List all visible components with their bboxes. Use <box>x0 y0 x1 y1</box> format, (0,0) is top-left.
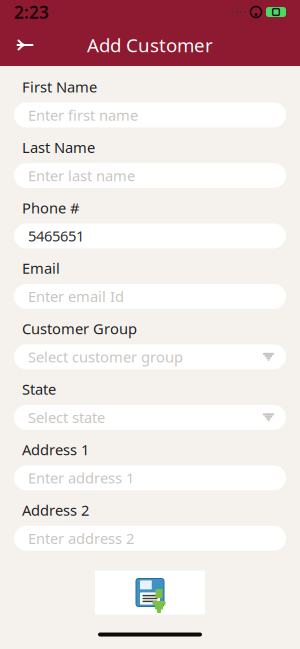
staticText: Enter address 2 <box>28 529 134 548</box>
staticText: State <box>22 379 56 399</box>
staticText: Address 2 <box>22 500 89 520</box>
button[interactable]: 5465651 <box>14 223 286 248</box>
staticText: Address 1 <box>22 440 89 459</box>
staticText: Select customer group <box>28 347 183 367</box>
button[interactable]: Back <box>6 28 44 62</box>
staticText: Email <box>22 258 60 278</box>
button[interactable]: Enter first name <box>14 102 286 127</box>
staticText: Select state <box>28 408 105 427</box>
staticText: Enter last name <box>28 166 135 185</box>
button[interactable]: Enter address 1 <box>14 465 286 490</box>
staticText: 5465651 <box>28 226 84 246</box>
staticText: Enter address 1 <box>28 468 134 488</box>
button[interactable]: Save <box>95 570 205 614</box>
button[interactable]: Enter email Id <box>14 284 286 309</box>
button[interactable]: Enter address 2 <box>14 526 286 551</box>
button[interactable]: Select state <box>14 405 286 430</box>
button[interactable]: Enter city <box>14 586 286 611</box>
staticText: Add Customer <box>87 33 213 57</box>
staticText: Enter first name <box>28 105 138 125</box>
button[interactable]: Enter last name <box>14 163 286 188</box>
staticText: Phone # <box>22 198 79 217</box>
staticText: 2:23 <box>14 0 49 23</box>
staticText: Customer Group <box>22 319 137 338</box>
button[interactable]: Select customer group <box>14 344 286 369</box>
staticText: Last Name <box>22 137 95 157</box>
staticText: Enter email Id <box>28 287 124 306</box>
staticText: First Name <box>22 77 97 96</box>
